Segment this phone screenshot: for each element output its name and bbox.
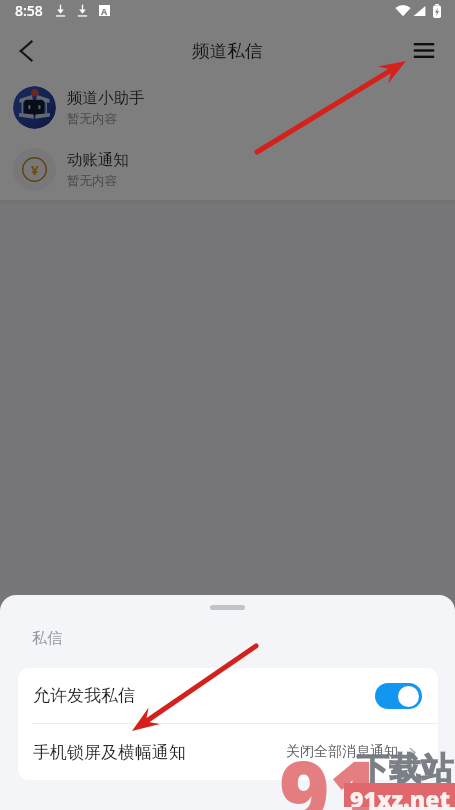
button[interactable]: 频道小助手 xyxy=(0,76,455,138)
staticText: 关闭全部消息通知 xyxy=(286,743,398,761)
staticText: 私信 xyxy=(32,629,62,648)
staticText: ¥ xyxy=(31,161,39,179)
staticText: 暂无内容 xyxy=(67,173,117,189)
button[interactable]: 手机锁屏及横幅通知 xyxy=(18,724,438,780)
staticText: 手机锁屏及横幅通知 xyxy=(33,742,186,763)
staticText: 暂无内容 xyxy=(67,111,117,127)
staticText: 允许发我私信 xyxy=(33,685,135,706)
button[interactable]: ¥ xyxy=(0,138,455,200)
staticText: A xyxy=(101,5,108,16)
staticText: 91 xyxy=(279,732,380,810)
button[interactable]: 允许发我私信 xyxy=(18,668,438,723)
button[interactable]: Menu xyxy=(393,25,455,76)
staticText: 频道私信 xyxy=(192,40,263,62)
button[interactable]: Back xyxy=(0,25,51,76)
staticText: 91xz.net xyxy=(350,783,450,807)
button[interactable]: Allow private messages toggle xyxy=(375,683,422,709)
staticText: 8:58 xyxy=(15,1,43,20)
staticText: 下载站 xyxy=(357,749,453,789)
staticText: 动账通知 xyxy=(67,150,129,170)
staticText: 频道小助手 xyxy=(67,88,145,108)
